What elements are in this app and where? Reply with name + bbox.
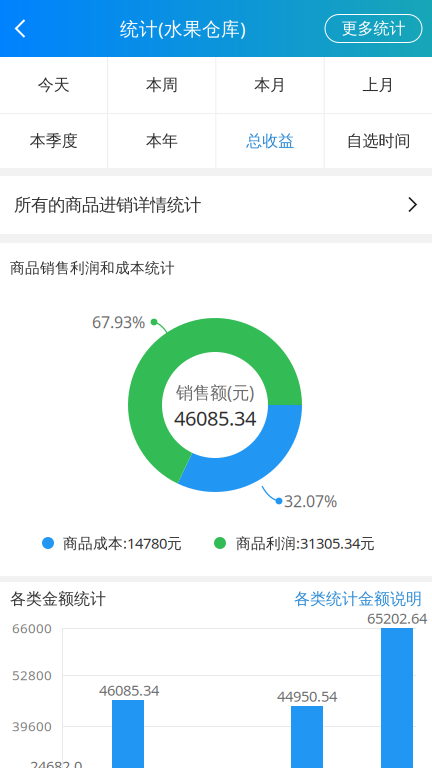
staticText: 46085.34 — [174, 405, 256, 431]
staticText: 本年 — [146, 131, 178, 151]
staticText: 商品销售利润和成本统计 — [10, 259, 175, 277]
button[interactable]: 本年 — [108, 114, 215, 168]
staticText: 各类统计金额说明 — [294, 589, 422, 609]
button[interactable]: 各类统计金额说明 — [294, 589, 422, 609]
button[interactable]: 本季度 — [0, 114, 107, 168]
button[interactable]: 上月 — [325, 57, 432, 113]
staticText: 44950.54 — [277, 686, 337, 706]
staticText: 上月 — [362, 75, 394, 95]
staticText: 66000 — [12, 619, 52, 637]
staticText: 67.93% — [92, 311, 145, 333]
staticText: 本周 — [146, 75, 178, 95]
staticText: 65202.64 — [367, 608, 427, 628]
button[interactable]: 本月 — [216, 57, 324, 113]
staticText: 统计(水果仓库) — [120, 16, 246, 41]
button[interactable]: 自选时间 — [325, 114, 432, 168]
staticText: 商品成本:14780元 — [63, 533, 182, 553]
staticText: 24682.0 — [30, 756, 82, 768]
button[interactable]: 本周 — [108, 57, 215, 113]
staticText: 各类金额统计 — [10, 589, 106, 609]
staticText: 本月 — [254, 75, 286, 95]
button[interactable]: 今天 — [0, 57, 107, 113]
button[interactable]: 所有的商品进销详情统计 — [0, 176, 432, 234]
staticText: 今天 — [38, 75, 70, 95]
staticText: 商品利润:31305.34元 — [236, 533, 375, 553]
button[interactable]: 更多统计 — [325, 14, 422, 42]
staticText: 32.07% — [284, 490, 337, 512]
staticText: 更多统计 — [341, 19, 405, 38]
button[interactable]: 总收益 — [216, 114, 324, 168]
staticText: 本季度 — [30, 131, 78, 151]
staticText: 52800 — [12, 666, 52, 684]
staticText: 总收益 — [246, 131, 294, 151]
staticText: 39600 — [12, 717, 52, 735]
staticText: 46085.34 — [99, 680, 159, 700]
button[interactable]: Back — [0, 0, 41, 57]
staticText: 自选时间 — [346, 131, 410, 151]
staticText: 所有的商品进销详情统计 — [14, 194, 201, 216]
staticText: 销售额(元) — [176, 381, 254, 404]
